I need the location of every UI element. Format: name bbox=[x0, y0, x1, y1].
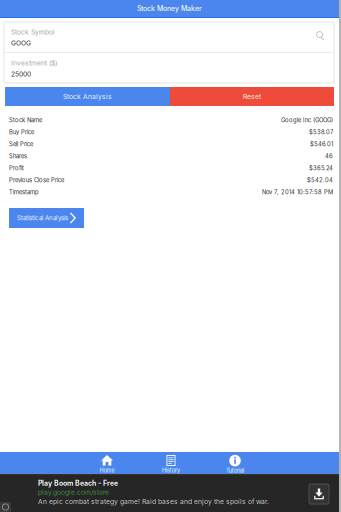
staticText: Sell Price bbox=[9, 140, 33, 148]
staticText: $365.24 bbox=[309, 164, 333, 172]
staticText: Buy Price bbox=[9, 128, 34, 136]
staticText: Stock Analysis bbox=[63, 92, 112, 101]
staticText: 25000 bbox=[11, 70, 31, 78]
button[interactable]: Tutorial bbox=[203, 452, 267, 474]
staticText: History bbox=[162, 467, 180, 474]
staticText: Stock Name bbox=[9, 116, 42, 124]
staticText: Profit bbox=[9, 164, 24, 172]
staticText: Stock Symbol bbox=[11, 28, 55, 36]
staticText: Stock Money Maker bbox=[137, 4, 202, 13]
staticText: Timestamp bbox=[9, 188, 39, 196]
staticText: GOOG bbox=[11, 39, 31, 47]
staticText: Nov 7, 2014 10:57:58 PM bbox=[262, 188, 333, 196]
staticText: Home bbox=[99, 467, 114, 474]
staticText: Reset bbox=[243, 92, 261, 101]
button[interactable]: Stock Analysis bbox=[5, 87, 170, 106]
staticText: Google Inc (GOOG) bbox=[281, 116, 333, 124]
button[interactable]: Reset bbox=[170, 87, 334, 106]
button[interactable]: Home bbox=[75, 452, 139, 474]
staticText: Tutorial bbox=[226, 467, 244, 474]
staticText: Statistical Analysis bbox=[17, 214, 68, 222]
staticText: Previous Close Price bbox=[9, 176, 64, 184]
staticText: Play Boom Beach - Free bbox=[38, 479, 118, 487]
staticText: 46 bbox=[325, 152, 333, 160]
staticText: $538.07 bbox=[309, 128, 333, 136]
button[interactable]: Install bbox=[309, 484, 329, 504]
staticText: Shares bbox=[9, 152, 27, 160]
staticText: $542.04 bbox=[307, 176, 333, 184]
staticText: An epic combat strategy game! Raid bases… bbox=[38, 497, 269, 506]
staticText: Investment ($) bbox=[11, 59, 57, 67]
button[interactable]: History bbox=[139, 452, 203, 474]
staticText: play.google.com/store bbox=[38, 488, 109, 496]
staticText: $546.01 bbox=[310, 140, 333, 148]
button[interactable]: Statistical Analysis bbox=[9, 208, 84, 228]
